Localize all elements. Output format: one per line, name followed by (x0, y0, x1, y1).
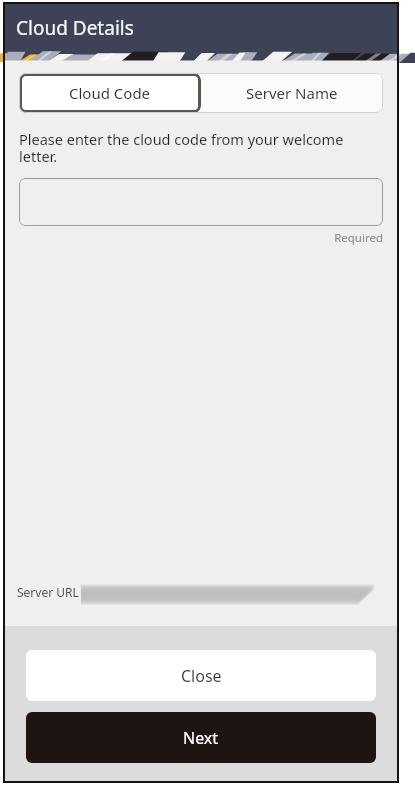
button[interactable]: Server Name (201, 73, 383, 113)
staticText: Server URL (17, 584, 79, 600)
staticText: Please enter the cloud code from your we… (19, 129, 383, 166)
staticText: Required (19, 230, 383, 246)
button[interactable]: Cloud Code (19, 73, 201, 113)
button[interactable] (19, 178, 383, 226)
button[interactable]: Next (26, 712, 376, 763)
staticText: Cloud Code (69, 83, 151, 103)
staticText: Next (183, 727, 219, 749)
staticText: Cloud Details (16, 15, 134, 41)
staticText: Close (181, 665, 222, 687)
staticText: Server Name (246, 83, 338, 103)
button[interactable]: Close (26, 650, 376, 701)
